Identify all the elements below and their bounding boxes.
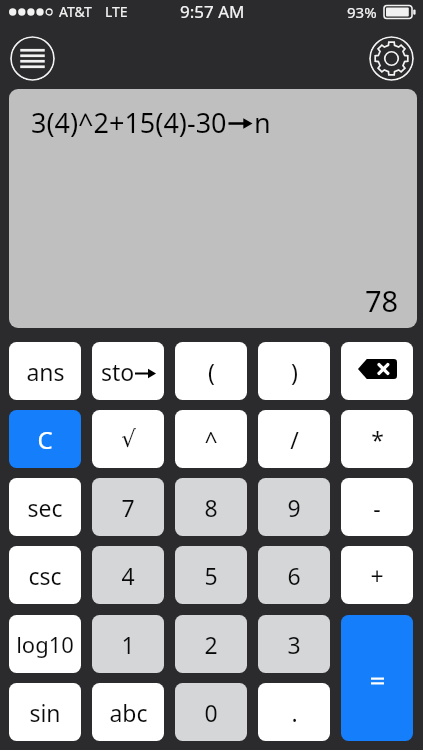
staticText: sec (27, 492, 63, 523)
button[interactable]: sin (9, 683, 81, 741)
staticText: 5 (204, 560, 218, 591)
other: Backspace (341, 342, 413, 400)
button[interactable]: Backspace (341, 342, 413, 400)
button[interactable]: ) (258, 342, 330, 400)
staticText: - (373, 492, 381, 523)
button[interactable]: . (258, 683, 330, 741)
button[interactable]: Menu (10, 36, 55, 81)
staticText: LTE (105, 2, 128, 21)
staticText: log10 (16, 629, 74, 659)
staticText: n (254, 104, 271, 141)
staticText: AT&T (59, 2, 92, 21)
staticText: 78 (365, 281, 399, 320)
button[interactable]: √ (92, 410, 164, 468)
button[interactable]: csc (9, 546, 81, 604)
button[interactable]: 6 (258, 546, 330, 604)
staticText: / (290, 424, 299, 455)
button[interactable]: + (341, 546, 413, 604)
staticText: C (37, 423, 53, 456)
button[interactable]: * (341, 410, 413, 468)
staticText: 8 (204, 492, 218, 523)
button[interactable]: 1 (92, 615, 164, 673)
button[interactable]: ( (175, 342, 247, 400)
staticText: sin (29, 697, 61, 728)
staticText: 1 (121, 629, 135, 660)
button[interactable]: 2 (175, 615, 247, 673)
button[interactable]: 7 (92, 478, 164, 536)
staticText: 93% (347, 2, 377, 22)
button[interactable]: 5 (175, 546, 247, 604)
button[interactable]: sto (92, 342, 164, 400)
staticText: 6 (287, 560, 301, 591)
staticText: 3 (287, 629, 301, 660)
staticText: . (291, 697, 298, 728)
button[interactable]: Equals (341, 615, 413, 741)
staticText: ( (208, 356, 215, 387)
button[interactable]: abc (92, 683, 164, 741)
staticText: csc (28, 560, 62, 591)
staticText: + (370, 560, 384, 591)
staticText: 4 (121, 560, 135, 591)
button[interactable]: / (258, 410, 330, 468)
staticText: 9 (287, 492, 301, 523)
button[interactable]: 8 (175, 478, 247, 536)
button[interactable]: ans (9, 342, 81, 400)
staticText: 0 (204, 697, 218, 728)
staticText: √ (121, 426, 136, 453)
staticText: ) (291, 356, 298, 387)
button[interactable]: ^ (175, 410, 247, 468)
staticText: 3(4)^2+15(4)-30 (31, 104, 227, 141)
other: Equals (341, 615, 413, 741)
button[interactable]: - (341, 478, 413, 536)
button[interactable]: Settings (369, 36, 414, 81)
staticText: ^ (204, 424, 218, 455)
staticText: 9:57 AM (180, 0, 245, 23)
button[interactable]: C (9, 410, 81, 468)
button[interactable]: log10 (9, 615, 81, 673)
button[interactable]: 4 (92, 546, 164, 604)
staticText: sto (101, 356, 135, 387)
staticText: * (371, 424, 384, 455)
staticText: 7 (121, 492, 135, 523)
staticText: 2 (204, 629, 218, 660)
staticText: abc (109, 697, 148, 728)
button[interactable]: sec (9, 478, 81, 536)
button[interactable]: 0 (175, 683, 247, 741)
button[interactable]: 9 (258, 478, 330, 536)
button[interactable]: 3 (258, 615, 330, 673)
staticText: ans (26, 356, 65, 387)
